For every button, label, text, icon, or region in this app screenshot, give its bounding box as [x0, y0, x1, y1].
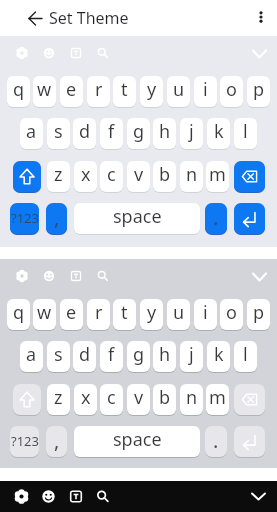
button[interactable]: w: [33, 299, 56, 330]
button[interactable]: n: [180, 161, 203, 192]
button[interactable]: c: [100, 384, 123, 415]
staticText: r: [95, 300, 103, 325]
button[interactable]: v: [127, 384, 150, 415]
button[interactable]: [89, 483, 116, 510]
button[interactable]: z: [47, 161, 70, 192]
button[interactable]: h: [153, 118, 176, 149]
button[interactable]: [23, 6, 48, 31]
button[interactable]: a: [20, 118, 43, 149]
button[interactable]: y: [140, 76, 163, 107]
button[interactable]: j: [180, 118, 203, 149]
button[interactable]: g: [127, 341, 150, 372]
button[interactable]: z: [47, 384, 70, 415]
button[interactable]: ?123: [10, 426, 39, 457]
button[interactable]: l: [234, 341, 257, 372]
button[interactable]: t: [113, 299, 136, 330]
button[interactable]: [35, 483, 62, 510]
button[interactable]: [62, 483, 89, 510]
staticText: b: [159, 385, 171, 410]
staticText: d: [79, 119, 91, 144]
button[interactable]: f: [100, 341, 123, 372]
button[interactable]: p: [247, 299, 270, 330]
button[interactable]: [244, 483, 271, 510]
button[interactable]: space: [74, 426, 200, 457]
button[interactable]: [234, 161, 265, 192]
staticText: w: [37, 77, 52, 102]
button[interactable]: m: [206, 161, 229, 192]
button[interactable]: u: [167, 299, 190, 330]
staticText: c: [107, 385, 116, 410]
button[interactable]: b: [153, 161, 176, 192]
button[interactable]: w: [33, 76, 56, 107]
button[interactable]: ?123: [10, 203, 39, 234]
staticText: o: [226, 77, 237, 102]
button[interactable]: k: [207, 341, 230, 372]
button[interactable]: .: [205, 426, 227, 457]
staticText: m: [209, 385, 226, 410]
button[interactable]: m: [206, 384, 229, 415]
button[interactable]: o: [220, 299, 243, 330]
button[interactable]: q: [7, 76, 30, 107]
button[interactable]: v: [127, 161, 150, 192]
button[interactable]: s: [47, 341, 70, 372]
button[interactable]: e: [60, 76, 83, 107]
button[interactable]: [249, 5, 273, 29]
staticText: space: [113, 204, 162, 229]
button[interactable]: l: [234, 118, 257, 149]
button[interactable]: y: [140, 299, 163, 330]
staticText: h: [159, 119, 171, 144]
staticText: g: [133, 342, 145, 367]
button[interactable]: t: [113, 76, 136, 107]
button[interactable]: r: [87, 299, 110, 330]
button[interactable]: [13, 384, 41, 415]
button[interactable]: [8, 483, 35, 510]
button[interactable]: [13, 161, 41, 192]
staticText: a: [26, 119, 37, 144]
staticText: i: [203, 77, 208, 102]
button[interactable]: ,: [46, 203, 67, 234]
button[interactable]: .: [205, 203, 227, 234]
button[interactable]: u: [167, 76, 190, 107]
staticText: e: [66, 300, 77, 325]
staticText: c: [107, 162, 116, 187]
button[interactable]: i: [194, 299, 217, 330]
staticText: j: [189, 119, 194, 144]
staticText: w: [37, 300, 52, 325]
button[interactable]: s: [47, 118, 70, 149]
staticText: v: [134, 385, 144, 410]
button[interactable]: o: [220, 76, 243, 107]
button[interactable]: i: [194, 76, 217, 107]
button[interactable]: q: [0, 36, 277, 247]
button[interactable]: f: [100, 118, 123, 149]
button[interactable]: space: [74, 203, 200, 234]
button[interactable]: [234, 384, 265, 415]
staticText: .: [213, 427, 219, 454]
button[interactable]: a: [20, 341, 43, 372]
staticText: p: [253, 300, 265, 325]
button[interactable]: x: [74, 384, 97, 415]
button[interactable]: c: [100, 161, 123, 192]
button[interactable]: h: [153, 341, 176, 372]
button[interactable]: k: [207, 118, 230, 149]
button[interactable]: b: [153, 384, 176, 415]
staticText: k: [214, 342, 224, 367]
staticText: j: [189, 342, 194, 367]
button[interactable]: d: [73, 341, 96, 372]
button[interactable]: r: [87, 76, 110, 107]
button[interactable]: ,: [46, 426, 67, 457]
button[interactable]: n: [180, 384, 203, 415]
staticText: y: [147, 77, 157, 102]
button[interactable]: [234, 426, 265, 457]
button[interactable]: x: [74, 161, 97, 192]
staticText: f: [108, 342, 115, 367]
button[interactable]: d: [73, 118, 96, 149]
staticText: m: [209, 162, 226, 187]
button[interactable]: p: [247, 76, 270, 107]
button[interactable]: q: [0, 259, 277, 468]
button[interactable]: e: [60, 299, 83, 330]
button[interactable]: j: [180, 341, 203, 372]
button[interactable]: q: [7, 299, 30, 330]
button[interactable]: g: [127, 118, 150, 149]
button[interactable]: [234, 203, 265, 234]
staticText: f: [108, 119, 115, 144]
